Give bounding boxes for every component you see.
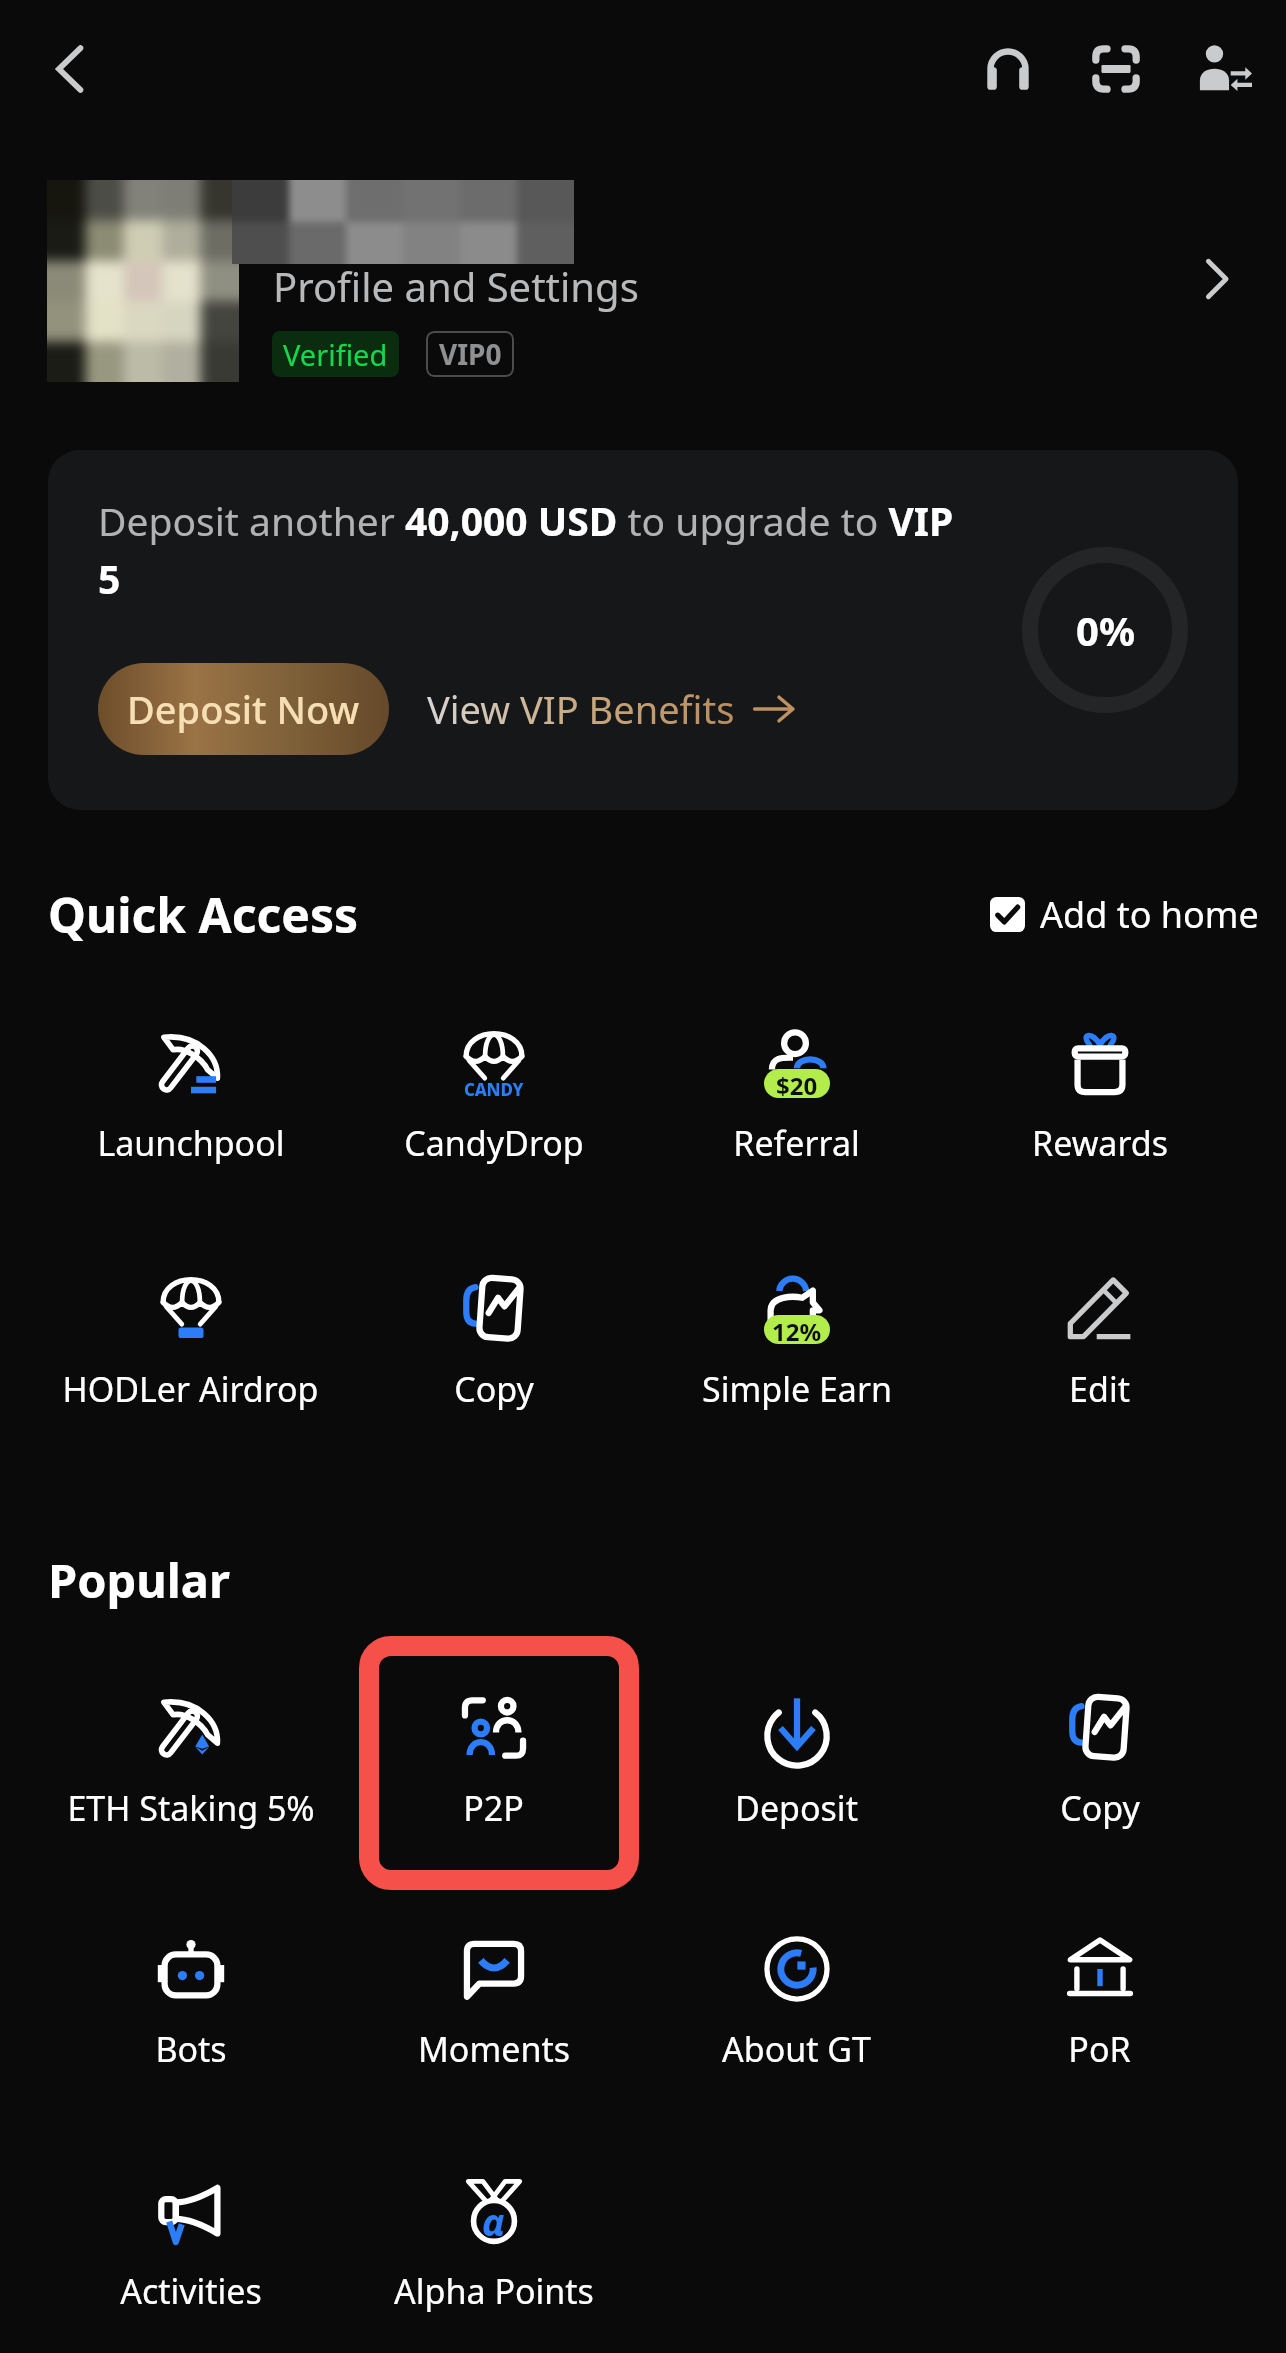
button[interactable]: ETH Staking 5% xyxy=(39,1695,342,1936)
staticText: CANDY xyxy=(464,1078,524,1101)
button[interactable]: Launchpool xyxy=(39,1030,342,1276)
button[interactable]: $20 xyxy=(645,1030,948,1276)
staticText: PoR xyxy=(1068,2026,1131,2072)
button[interactable]: Deposit Now xyxy=(98,663,389,755)
button[interactable]: P2P xyxy=(342,1695,645,1936)
staticText: 0% xyxy=(1076,603,1135,657)
button[interactable]: Rewards xyxy=(948,1030,1251,1276)
staticText: ETH Staking 5% xyxy=(67,1785,315,1831)
button[interactable]: Activities xyxy=(39,2178,342,2353)
button[interactable]: Deposit another 40,000 USD to upgrade to… xyxy=(48,450,1238,810)
staticText: P2P xyxy=(463,1785,524,1831)
button[interactable]: Copy xyxy=(342,1276,645,1522)
other: Open profile and settings xyxy=(1192,254,1242,304)
button[interactable]: Copy xyxy=(948,1695,1251,1936)
button[interactable]: HODLer Airdrop xyxy=(39,1276,342,1522)
staticText: VIP0 xyxy=(439,335,502,373)
staticText: α xyxy=(482,2195,506,2247)
staticText: CandyDrop xyxy=(404,1120,584,1166)
staticText: About GT xyxy=(722,2026,871,2072)
staticText: HODLer Airdrop xyxy=(62,1366,319,1412)
staticText: Activities xyxy=(120,2268,262,2314)
staticText: Copy xyxy=(454,1366,534,1412)
button[interactable]: Scan QR code xyxy=(1074,27,1158,111)
button[interactable]: Profile and Settings xyxy=(0,138,1286,420)
button[interactable]: Edit xyxy=(948,1276,1251,1522)
staticText: Launchpool xyxy=(97,1120,285,1166)
button[interactable]: Moments xyxy=(342,1936,645,2178)
staticText: Deposit Now xyxy=(127,683,360,735)
staticText: Popular xyxy=(48,1548,230,1612)
staticText: Profile and Settings xyxy=(273,259,639,313)
staticText: Copy xyxy=(1060,1785,1140,1831)
staticText: $20 xyxy=(776,1069,818,1098)
staticText: Verified xyxy=(283,335,388,374)
staticText: Deposit xyxy=(735,1785,858,1831)
staticText: Rewards xyxy=(1032,1120,1168,1166)
staticText: 12% xyxy=(772,1315,822,1344)
staticText: Deposit another 40,000 USD to upgrade to… xyxy=(98,494,978,605)
staticText: View VIP Benefits xyxy=(427,683,735,735)
button[interactable]: View VIP Benefits xyxy=(427,673,795,745)
button[interactable]: Deposit xyxy=(645,1695,948,1936)
button[interactable]: α xyxy=(342,2178,645,2353)
button[interactable]: CANDY xyxy=(342,1030,645,1276)
button[interactable]: About GT xyxy=(645,1936,948,2178)
button[interactable]: Bots xyxy=(39,1936,342,2178)
button[interactable]: Switch account xyxy=(1182,27,1266,111)
staticText: Simple Earn xyxy=(702,1366,892,1412)
staticText: Referral xyxy=(733,1120,860,1166)
staticText: Add to home xyxy=(1040,890,1259,939)
button[interactable]: Back xyxy=(26,25,114,113)
staticText: Edit xyxy=(1069,1366,1130,1412)
staticText: Alpha Points xyxy=(394,2268,594,2314)
staticText: Quick Access xyxy=(48,882,359,947)
button[interactable]: 12% xyxy=(645,1276,948,1522)
button[interactable]: Add to home xyxy=(990,890,1259,939)
button[interactable]: PoR xyxy=(948,1936,1251,2178)
staticText: Moments xyxy=(418,2026,570,2072)
button[interactable]: Customer support xyxy=(966,27,1050,111)
staticText: Bots xyxy=(155,2026,227,2072)
